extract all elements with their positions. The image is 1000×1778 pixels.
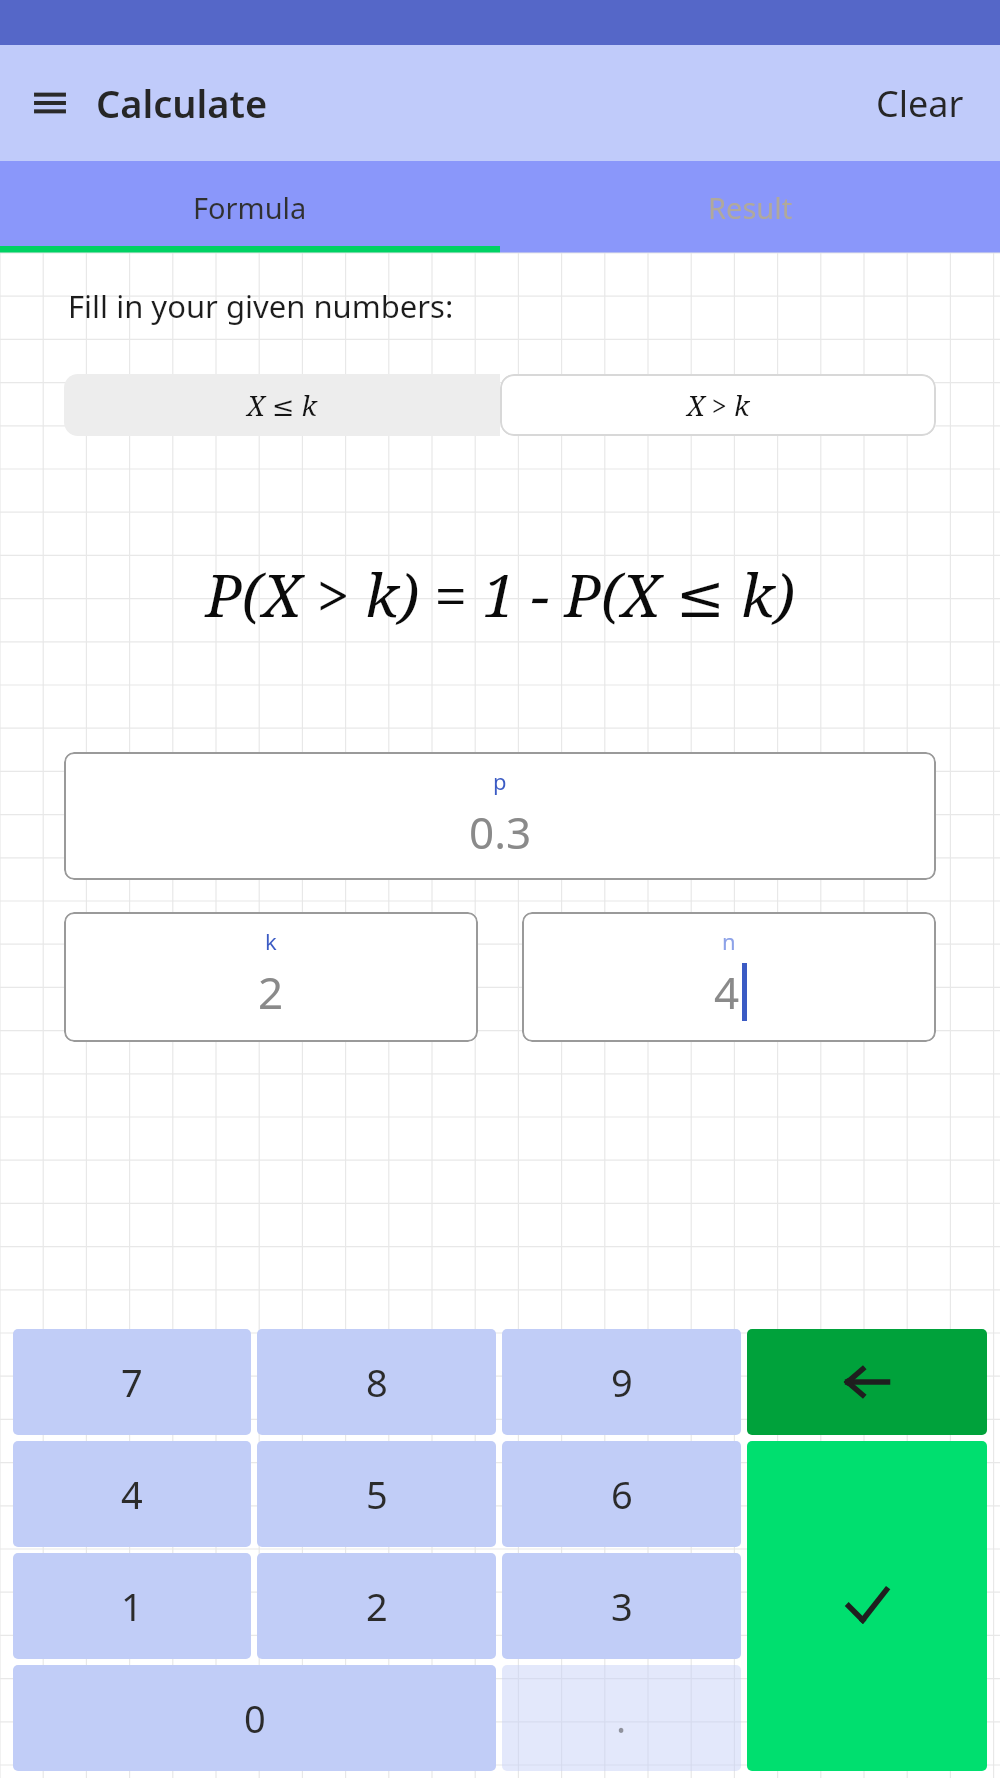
button[interactable]: Clear (852, 61, 988, 146)
button[interactable]: Result (500, 161, 1000, 253)
staticText: k (265, 926, 277, 956)
staticText: 2 (258, 962, 284, 1022)
staticText: P(X > k) = 1 − P(X ≤ k) (205, 554, 795, 634)
staticText: 4 (121, 1468, 143, 1520)
staticText: n (722, 926, 736, 956)
staticText: X > k (687, 387, 750, 424)
button[interactable]: n (522, 912, 936, 1042)
button[interactable]: 7 (13, 1329, 251, 1435)
staticText: 7 (121, 1356, 143, 1408)
button[interactable]: 9 (502, 1329, 741, 1435)
staticText: 1 (121, 1580, 143, 1632)
staticText: 6 (611, 1468, 633, 1520)
button[interactable]: Formula (0, 161, 500, 253)
button[interactable]: k (64, 912, 478, 1042)
button[interactable]: 5 (257, 1441, 496, 1547)
button[interactable]: p (64, 752, 936, 880)
staticText: Fill in your given numbers: (68, 285, 454, 327)
staticText: X ≤ k (247, 387, 317, 424)
button[interactable]: 2 (257, 1553, 496, 1659)
staticText: 9 (611, 1356, 633, 1408)
button[interactable]: X ≤ k (64, 374, 500, 436)
staticText: Calculate (96, 77, 268, 129)
staticText: 0.3 (469, 802, 532, 862)
button[interactable]: 1 (13, 1553, 251, 1659)
button[interactable]: Confirm (747, 1441, 987, 1771)
staticText: 2 (366, 1580, 388, 1632)
staticText: 5 (366, 1468, 388, 1520)
staticText: 4 (714, 962, 740, 1022)
staticText: Clear (876, 79, 964, 128)
button[interactable]: 3 (502, 1553, 741, 1659)
button[interactable]: 0 (13, 1665, 496, 1771)
button[interactable]: 8 (257, 1329, 496, 1435)
staticText: Result (708, 188, 793, 227)
staticText: . (616, 1692, 627, 1744)
button[interactable]: . (502, 1665, 741, 1771)
staticText: Formula (193, 188, 307, 227)
button[interactable]: 6 (502, 1441, 741, 1547)
button[interactable]: Backspace (747, 1329, 987, 1435)
staticText: 8 (366, 1356, 388, 1408)
button[interactable]: 4 (13, 1441, 251, 1547)
button[interactable]: Open navigation menu (20, 73, 80, 133)
staticText: p (493, 766, 507, 796)
staticText: 0 (244, 1692, 266, 1744)
button[interactable]: X > k (500, 374, 936, 436)
staticText: 3 (611, 1580, 633, 1632)
